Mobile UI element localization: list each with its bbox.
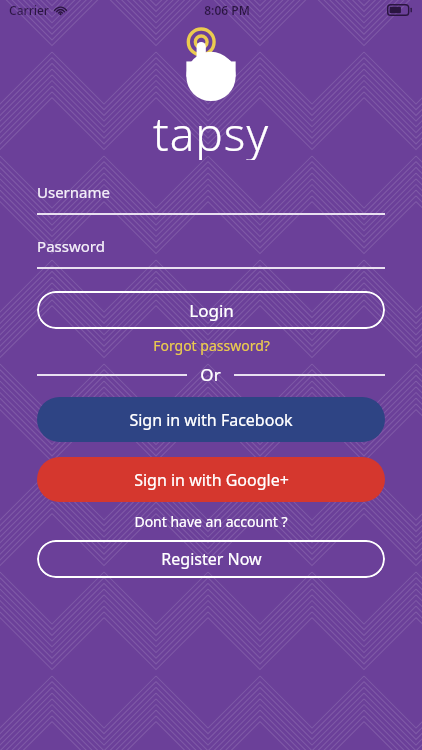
staticText: Username <box>37 182 110 202</box>
staticText: Forgot password? <box>153 336 270 355</box>
other: Tapsy logo <box>183 32 239 96</box>
staticText: Password <box>37 236 105 256</box>
other: Battery <box>387 4 413 16</box>
staticText: 8:06 PM <box>204 2 250 18</box>
button[interactable]: Password <box>37 236 385 269</box>
staticText: Dont have an account ? <box>134 512 288 531</box>
staticText: tapsy <box>153 102 269 160</box>
staticText: Register Now <box>161 548 262 570</box>
staticText: Or <box>200 363 221 386</box>
button[interactable]: Sign in with Facebook <box>37 397 385 442</box>
staticText: Sign in with Google+ <box>134 469 289 491</box>
staticText: Login <box>189 299 234 322</box>
button[interactable]: Register Now <box>37 540 385 578</box>
staticText: Carrier <box>9 2 49 18</box>
button[interactable]: Sign in with Google+ <box>37 457 385 502</box>
button[interactable]: Login <box>37 291 385 329</box>
other: Wi-Fi <box>54 5 67 15</box>
staticText: Sign in with Facebook <box>129 409 293 431</box>
button[interactable]: Username <box>37 182 385 215</box>
button[interactable]: Forgot password? <box>37 333 385 357</box>
